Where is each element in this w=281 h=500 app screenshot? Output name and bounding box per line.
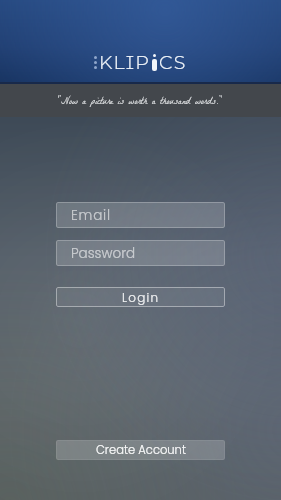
- staticText: CS: [159, 51, 187, 74]
- staticText: KLIP: [99, 51, 151, 74]
- button[interactable]: Email: [56, 202, 225, 228]
- staticText: Create Account: [96, 442, 186, 458]
- button[interactable]: Login: [56, 287, 225, 307]
- staticText: Email: [71, 206, 111, 225]
- staticText: Login: [122, 289, 160, 306]
- staticText: Password: [71, 244, 136, 263]
- button[interactable]: Create Account: [56, 440, 225, 460]
- staticText: “Now a picture is worth a thousand words…: [58, 94, 223, 111]
- button[interactable]: Password: [56, 240, 225, 266]
